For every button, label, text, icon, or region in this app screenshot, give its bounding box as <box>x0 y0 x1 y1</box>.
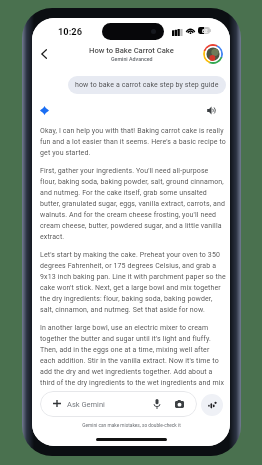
staticText: How to Bake Carrot Cake <box>89 46 174 55</box>
button[interactable]: Account <box>202 43 223 64</box>
button[interactable]: Voice input <box>148 395 166 413</box>
staticText: First, gather your ingredients. You'll n… <box>40 167 226 241</box>
button[interactable]: Camera <box>170 395 188 413</box>
staticText: Gemini can make mistakes, so double-chec… <box>82 423 181 429</box>
staticText: 62 <box>202 28 208 34</box>
staticText: Let's start by making the cake. Preheat … <box>40 251 226 314</box>
button[interactable]: Gemini Live <box>201 394 223 416</box>
staticText: 10:26 <box>58 26 82 37</box>
staticText: In another large bowl, use an electric m… <box>40 324 226 387</box>
button[interactable]: Listen <box>205 104 217 116</box>
button[interactable]: Ask Gemini <box>40 391 197 417</box>
staticText: Ask Gemini <box>67 400 105 409</box>
staticText: Gemini Advanced <box>111 56 153 62</box>
button[interactable]: Back <box>34 44 54 64</box>
staticText: Okay, I can help you with that! Baking c… <box>40 127 226 157</box>
staticText: how to bake a carrot cake step by step g… <box>75 81 219 89</box>
button[interactable]: how to bake a carrot cake step by step g… <box>68 76 226 94</box>
